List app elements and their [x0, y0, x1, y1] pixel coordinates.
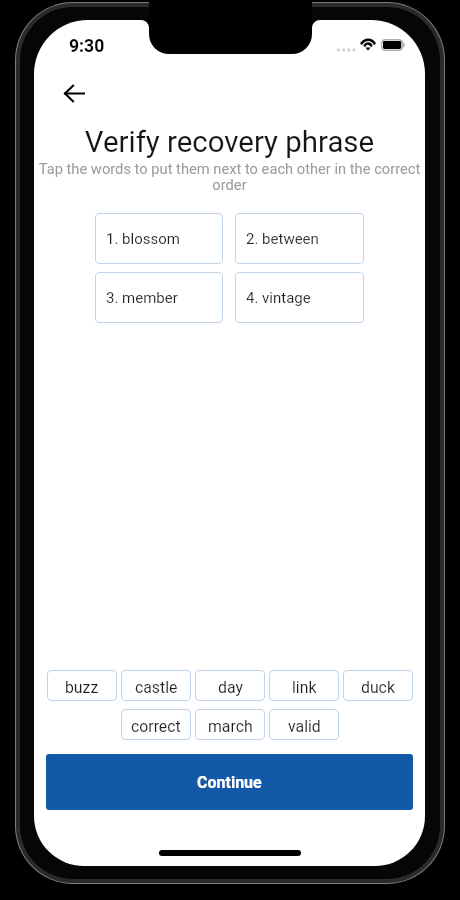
button[interactable]: Back: [50, 69, 98, 117]
staticText: castle: [135, 678, 178, 697]
staticText: 4. vintage: [246, 289, 311, 307]
button[interactable]: 2. between: [235, 213, 364, 264]
button[interactable]: 3. member: [95, 272, 223, 323]
staticText: Continue: [197, 773, 262, 792]
staticText: 9:30: [69, 36, 105, 57]
staticText: Tap the words to put them next to each o…: [35, 160, 424, 194]
staticText: buzz: [65, 678, 99, 697]
staticText: duck: [361, 678, 395, 697]
staticText: link: [292, 678, 317, 697]
staticText: 3. member: [106, 289, 178, 307]
button[interactable]: 1. blossom: [95, 213, 223, 264]
button[interactable]: Continue: [46, 754, 413, 810]
staticText: march: [208, 717, 253, 736]
button[interactable]: buzz: [47, 670, 117, 701]
button[interactable]: valid: [269, 709, 339, 740]
button[interactable]: duck: [343, 670, 413, 701]
staticText: day: [218, 678, 243, 697]
staticText: 1. blossom: [106, 230, 180, 248]
staticText: Verify recovery phrase: [34, 125, 425, 159]
button[interactable]: link: [269, 670, 339, 701]
staticText: correct: [131, 717, 181, 736]
button[interactable]: 4. vintage: [235, 272, 364, 323]
staticText: valid: [288, 717, 321, 736]
button[interactable]: day: [195, 670, 265, 701]
button[interactable]: march: [195, 709, 265, 740]
button[interactable]: correct: [121, 709, 191, 740]
button[interactable]: castle: [121, 670, 191, 701]
staticText: 2. between: [246, 230, 319, 248]
